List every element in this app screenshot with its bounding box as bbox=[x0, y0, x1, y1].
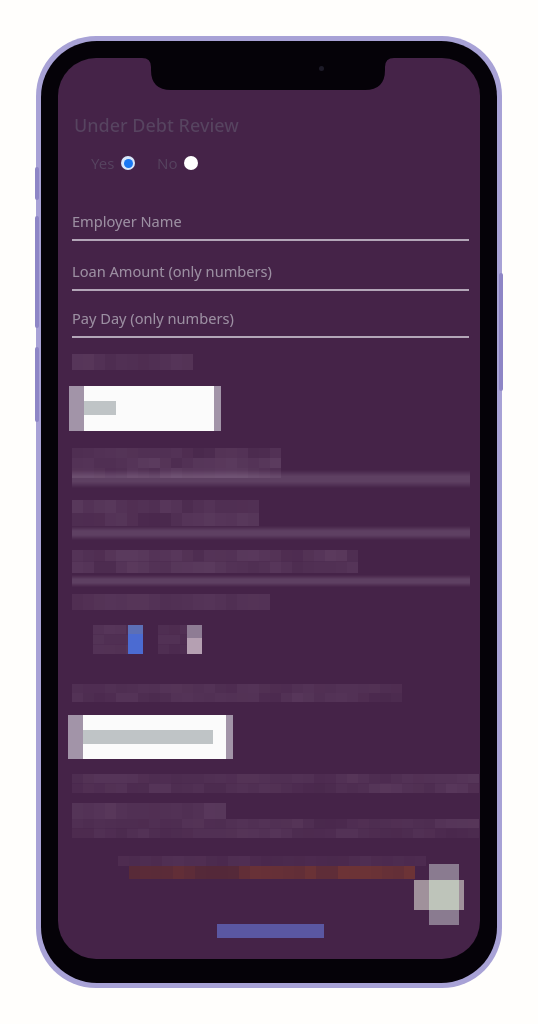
staticText: Employer Name bbox=[72, 211, 182, 231]
button[interactable]: Loan Amount (only numbers) bbox=[72, 261, 469, 291]
staticText: Yes bbox=[91, 153, 115, 173]
button[interactable]: Widget bbox=[414, 864, 464, 925]
button[interactable]: Select bbox=[69, 386, 221, 431]
button[interactable]: No bbox=[157, 153, 198, 173]
staticText: No bbox=[157, 153, 178, 173]
button[interactable] bbox=[158, 625, 202, 654]
button[interactable]: Select bbox=[68, 715, 233, 759]
staticText: Loan Amount (only numbers) bbox=[72, 261, 272, 281]
button[interactable] bbox=[93, 625, 143, 654]
button[interactable]: Pay Day (only numbers) bbox=[72, 308, 469, 338]
staticText: Under Debt Review bbox=[74, 113, 239, 138]
button[interactable]: Yes bbox=[91, 153, 135, 173]
staticText: Pay Day (only numbers) bbox=[72, 308, 234, 328]
button[interactable]: Employer Name bbox=[72, 211, 469, 241]
